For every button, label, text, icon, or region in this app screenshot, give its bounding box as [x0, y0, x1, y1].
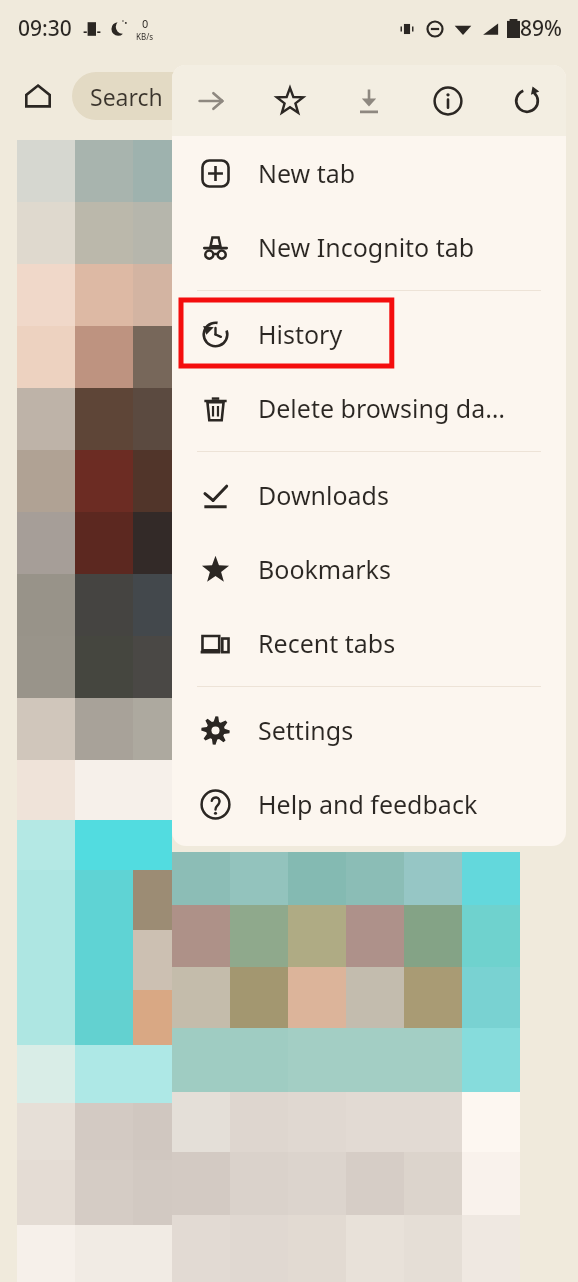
button[interactable]: History [172, 297, 566, 371]
staticText: Help and feedback [258, 787, 478, 821]
staticText: 0 [142, 16, 149, 31]
button[interactable]: Help and feedback [172, 767, 566, 841]
button[interactable]: New tab [172, 136, 566, 210]
button[interactable]: Bookmarks [172, 532, 566, 606]
staticText: History [258, 317, 343, 351]
button[interactable]: Reload [487, 65, 566, 136]
button[interactable]: Page info [408, 65, 487, 136]
staticText: New tab [258, 156, 356, 190]
button[interactable]: Download [329, 65, 408, 136]
staticText: Bookmarks [258, 552, 391, 586]
button[interactable]: Search [72, 72, 272, 120]
staticText: Downloads [258, 478, 389, 512]
button[interactable]: Settings [172, 693, 566, 767]
button[interactable]: New Incognito tab [172, 210, 566, 284]
staticText: 89% [520, 14, 562, 43]
button[interactable]: Home [14, 72, 62, 120]
staticText: Search [90, 81, 163, 112]
button[interactable]: Recent tabs [172, 606, 566, 680]
staticText: New Incognito tab [258, 230, 475, 264]
staticText: KB/s [136, 31, 154, 42]
staticText: Delete browsing da… [258, 391, 505, 425]
staticText: Recent tabs [258, 626, 396, 660]
staticText: 09:30 [18, 14, 72, 43]
button[interactable]: Bookmark [250, 65, 329, 136]
button[interactable]: Delete browsing da… [172, 371, 566, 445]
staticText: Settings [258, 713, 354, 747]
button[interactable]: Downloads [172, 458, 566, 532]
button[interactable]: Forward [172, 65, 250, 136]
